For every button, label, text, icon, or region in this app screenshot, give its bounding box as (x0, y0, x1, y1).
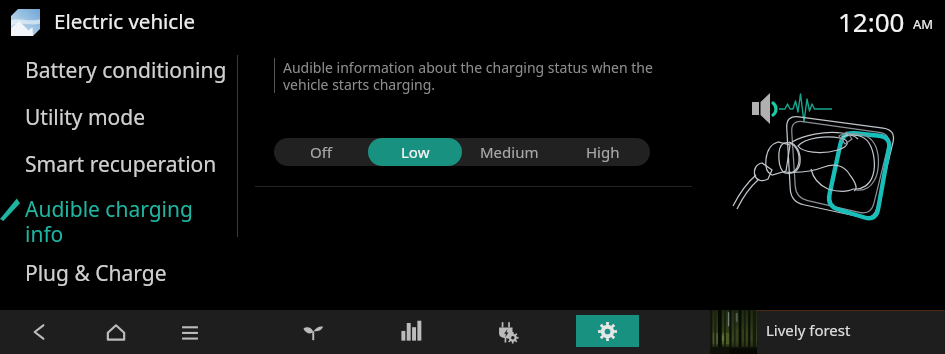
staticText: 12:00 (838, 4, 905, 39)
button[interactable]: High (556, 138, 650, 166)
staticText: Plug & Charge (25, 259, 167, 288)
staticText: Lively forest (766, 320, 851, 340)
button[interactable]: Menu (166, 310, 214, 354)
button[interactable]: Battery conditioning (0, 46, 236, 92)
staticText: Low (401, 142, 430, 162)
button[interactable]: Eco driving (289, 310, 337, 354)
button[interactable]: Energy (387, 310, 435, 354)
button[interactable]: Lively forest (710, 310, 944, 354)
button[interactable]: Audible charging info (0, 185, 236, 245)
button[interactable]: Off (274, 138, 368, 166)
staticText: Smart recuperation (25, 150, 217, 179)
button[interactable]: Utility mode (0, 93, 236, 139)
button[interactable]: Charging (483, 310, 531, 354)
button[interactable]: Back (15, 310, 63, 354)
staticText: Audible charging info (25, 195, 193, 248)
staticText: Audible information about the charging s… (283, 58, 653, 94)
staticText: Battery conditioning (25, 56, 227, 85)
staticText: High (586, 142, 620, 162)
button[interactable]: Plug & Charge (0, 249, 236, 295)
staticText: Electric vehicle (54, 7, 196, 35)
button[interactable]: Medium (462, 138, 556, 166)
button[interactable]: Smart recuperation (0, 140, 236, 186)
staticText: Utility mode (25, 103, 146, 132)
staticText: Off (310, 142, 333, 162)
button[interactable]: Low (368, 138, 462, 166)
button[interactable]: Home (92, 310, 140, 354)
staticText: Medium (480, 142, 539, 162)
staticText: AM (913, 15, 934, 33)
button[interactable]: Settings (576, 315, 639, 347)
